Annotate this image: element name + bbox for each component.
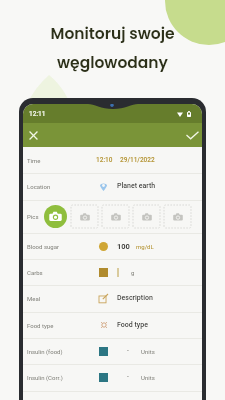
staticText: Food type [27, 322, 54, 329]
button[interactable]: Pics [23, 200, 202, 233]
button[interactable]: Close [25, 127, 42, 144]
button[interactable]: Time [23, 147, 202, 173]
staticText: węglowodany [57, 52, 168, 74]
staticText: Time [27, 157, 41, 164]
staticText: 100 [117, 242, 130, 251]
staticText: Carbs [27, 269, 43, 276]
staticText: 12:10 [96, 156, 113, 164]
staticText: Food type [117, 321, 148, 329]
staticText: Insulin (Corr.) [27, 374, 63, 381]
staticText: Pics [27, 213, 39, 220]
staticText: Monitoruj swoje [50, 23, 175, 45]
staticText: Insulin (food) [27, 348, 63, 355]
button[interactable]: Insulin (food) [23, 338, 202, 364]
staticText: Location [27, 183, 51, 190]
button[interactable]: Insulin [23, 391, 202, 400]
button[interactable]: Food type [23, 312, 202, 338]
button[interactable]: Location [23, 173, 202, 199]
staticText: Units [141, 348, 155, 355]
button[interactable]: Insulin (Corr.) [23, 364, 202, 390]
staticText: Blood sugar [27, 243, 59, 250]
staticText: Planet earth [117, 182, 156, 190]
staticText: mg/dL [136, 243, 154, 250]
staticText: 12:11 [29, 110, 46, 118]
staticText: Meal [27, 295, 41, 302]
button[interactable]: Blood sugar [23, 233, 202, 259]
staticText: - [127, 347, 129, 355]
staticText: 29/11/2022 [120, 156, 155, 164]
button[interactable]: Save [183, 126, 201, 144]
button[interactable]: Meal [23, 285, 202, 311]
staticText: - [127, 373, 129, 381]
staticText: Units [141, 374, 155, 381]
staticText: Description [117, 294, 153, 302]
staticText: g [131, 269, 135, 276]
button[interactable]: Carbs [23, 259, 202, 285]
